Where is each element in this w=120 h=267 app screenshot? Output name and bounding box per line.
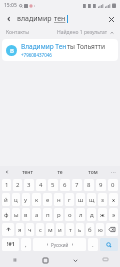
button[interactable]: Hide keyboard xyxy=(90,253,120,267)
button[interactable]: п xyxy=(43,208,52,221)
button[interactable]: , xyxy=(21,238,31,251)
button[interactable]: В xyxy=(2,39,118,61)
button[interactable]: Clear xyxy=(105,13,117,25)
button[interactable]: ш xyxy=(76,193,85,206)
button[interactable]: 9 xyxy=(96,179,106,191)
button[interactable]: ю xyxy=(96,223,104,236)
button[interactable]: й xyxy=(2,193,10,206)
staticText: п xyxy=(46,211,50,219)
button[interactable]: х xyxy=(109,193,118,206)
button[interactable]: 3 xyxy=(24,179,34,191)
staticText: х xyxy=(112,196,116,204)
staticText: тен xyxy=(54,14,66,24)
button[interactable]: е xyxy=(43,193,52,206)
button[interactable]: ф xyxy=(2,208,10,221)
button[interactable]: Русский xyxy=(33,238,86,251)
button[interactable]: в xyxy=(22,208,30,221)
button[interactable]: о xyxy=(65,208,74,221)
staticText: я xyxy=(18,226,22,234)
staticText: ь xyxy=(78,226,82,234)
button[interactable]: у xyxy=(22,193,30,206)
staticText: 0 xyxy=(111,181,115,189)
staticText: у xyxy=(24,196,28,204)
button[interactable]: 4 xyxy=(36,179,46,191)
button[interactable]: том xyxy=(76,166,109,178)
button[interactable]: 7 xyxy=(72,179,82,191)
button[interactable]: Shift xyxy=(2,223,14,236)
staticText: р xyxy=(57,211,61,219)
button[interactable]: More options xyxy=(109,168,117,176)
button[interactable]: э xyxy=(109,208,118,221)
button[interactable]: 5 xyxy=(48,179,58,191)
staticText: том xyxy=(88,169,98,176)
staticText: т xyxy=(69,226,72,234)
staticText: Русский xyxy=(51,242,69,248)
button[interactable]: 2 xyxy=(13,179,22,191)
staticText: ф xyxy=(4,211,9,219)
button[interactable]: ь xyxy=(76,223,84,236)
button[interactable]: л xyxy=(76,208,85,221)
button[interactable]: Previous suggestions xyxy=(3,168,11,176)
button[interactable]: т xyxy=(66,223,74,236)
button[interactable]: р xyxy=(54,208,63,221)
button[interactable]: 8 xyxy=(84,179,94,191)
button[interactable]: Backspace xyxy=(106,223,118,236)
staticText: ю xyxy=(98,226,103,234)
button[interactable]: ц xyxy=(12,193,20,206)
button[interactable]: и xyxy=(56,223,64,236)
button[interactable]: Search xyxy=(100,238,118,251)
staticText: . xyxy=(92,241,94,249)
button[interactable]: тент xyxy=(11,166,43,178)
staticText: Владимир Тен xyxy=(21,42,67,51)
button[interactable]: н xyxy=(54,193,63,206)
button[interactable]: 6 xyxy=(60,179,70,191)
button[interactable]: Back xyxy=(60,253,90,267)
button[interactable]: з xyxy=(98,193,107,206)
staticText: › xyxy=(34,3,36,8)
staticText: Контакты xyxy=(6,29,29,36)
button[interactable]: г xyxy=(65,193,74,206)
button[interactable]: д xyxy=(87,208,96,221)
button[interactable]: щ xyxy=(87,193,96,206)
button[interactable]: м xyxy=(46,223,54,236)
staticText: ты Тольятти xyxy=(67,42,105,51)
staticText: е xyxy=(46,196,50,204)
staticText: 1 xyxy=(5,181,9,189)
button[interactable]: Найдено 1 результат xyxy=(57,29,114,36)
staticText: те xyxy=(57,169,63,176)
button[interactable]: к xyxy=(32,193,41,206)
button[interactable]: б xyxy=(86,223,94,236)
button[interactable]: ч xyxy=(26,223,34,236)
button[interactable]: 1 xyxy=(2,179,11,191)
button[interactable]: я xyxy=(16,223,24,236)
staticText: н xyxy=(57,196,61,204)
button[interactable]: . xyxy=(88,238,98,251)
staticText: 7 xyxy=(75,181,79,189)
staticText: л xyxy=(79,211,83,219)
staticText: й xyxy=(4,196,8,204)
staticText: В xyxy=(10,47,14,55)
staticText: 15:05 xyxy=(4,2,17,9)
button[interactable]: 0 xyxy=(108,179,118,191)
button[interactable]: ж xyxy=(98,208,107,221)
button[interactable]: те xyxy=(43,166,76,178)
staticText: а xyxy=(35,211,39,219)
button[interactable]: Recents xyxy=(0,253,30,267)
button[interactable]: а xyxy=(32,208,41,221)
button[interactable]: ы xyxy=(12,208,20,221)
button[interactable]: Home xyxy=(30,253,60,267)
staticText: о xyxy=(68,211,72,219)
staticText: д xyxy=(90,211,94,219)
staticText: с xyxy=(39,226,42,234)
button[interactable]: с xyxy=(36,223,44,236)
button[interactable]: владимир xyxy=(17,14,105,24)
staticText: тент xyxy=(22,169,33,176)
staticText: 2 xyxy=(16,181,20,189)
staticText: щ xyxy=(89,196,95,204)
staticText: м xyxy=(48,226,53,234)
staticText: ы xyxy=(14,211,19,219)
button[interactable]: Back xyxy=(3,13,15,25)
staticText: ш xyxy=(78,196,84,204)
button[interactable]: !#1 xyxy=(2,238,19,251)
staticText: 8 xyxy=(87,181,91,189)
